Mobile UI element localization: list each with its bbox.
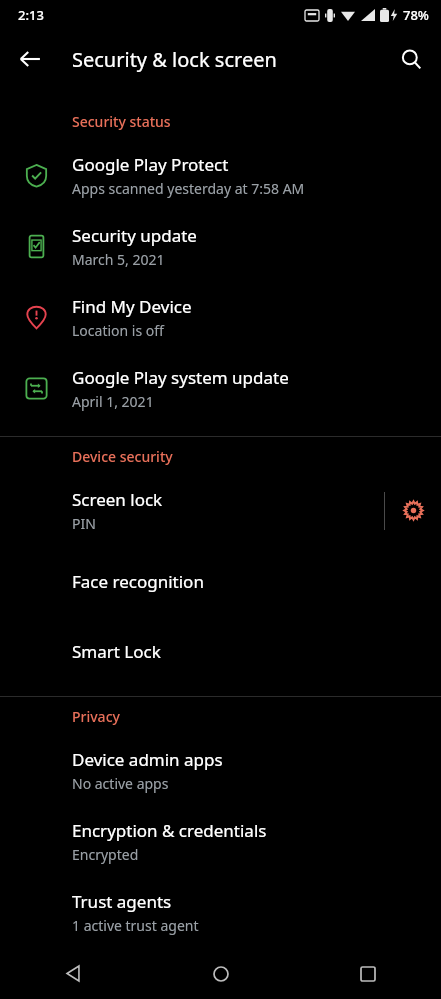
- button[interactable]: Google Play system update: [0, 353, 441, 424]
- button[interactable]: Trust agents: [0, 877, 441, 948]
- button[interactable]: Encryption & credentials: [0, 806, 441, 877]
- button[interactable]: Back: [0, 948, 147, 999]
- staticText: 78%: [403, 6, 429, 24]
- staticText: 1 active trust agent: [72, 916, 199, 935]
- staticText: 2:13: [18, 6, 44, 24]
- staticText: Security update: [72, 224, 197, 247]
- staticText: Security status: [72, 112, 171, 131]
- staticText: Smart Lock: [72, 640, 161, 663]
- button[interactable]: Recent apps: [294, 948, 441, 999]
- button[interactable]: Screen lock: [0, 475, 384, 546]
- staticText: April 1, 2021: [72, 392, 154, 411]
- staticText: Encrypted: [72, 845, 139, 864]
- button[interactable]: Google Play Protect: [0, 140, 441, 211]
- staticText: Face recognition: [72, 570, 204, 593]
- staticText: PIN: [72, 514, 96, 533]
- staticText: Security & lock screen: [72, 46, 277, 73]
- staticText: Apps scanned yesterday at 7:58 AM: [72, 179, 305, 198]
- button[interactable]: Device admin apps: [0, 735, 441, 806]
- button[interactable]: Face recognition: [0, 546, 441, 616]
- button[interactable]: Screen lock settings: [385, 475, 441, 546]
- button[interactable]: Search: [389, 37, 433, 81]
- staticText: Privacy: [72, 707, 120, 726]
- staticText: March 5, 2021: [72, 250, 165, 269]
- staticText: Device admin apps: [72, 748, 223, 771]
- button[interactable]: Security update: [0, 211, 441, 282]
- staticText: Find My Device: [72, 295, 192, 318]
- button[interactable]: Find My Device: [0, 282, 441, 353]
- staticText: Google Play Protect: [72, 153, 229, 176]
- staticText: Trust agents: [72, 890, 172, 913]
- button[interactable]: Back: [8, 37, 52, 81]
- staticText: No active apps: [72, 774, 169, 793]
- button[interactable]: Home: [147, 948, 294, 999]
- staticText: Location is off: [72, 321, 164, 340]
- staticText: Screen lock: [72, 488, 163, 511]
- staticText: Google Play system update: [72, 366, 289, 389]
- staticText: Encryption & credentials: [72, 819, 267, 842]
- button[interactable]: Smart Lock: [0, 616, 441, 686]
- staticText: Device security: [72, 447, 173, 466]
